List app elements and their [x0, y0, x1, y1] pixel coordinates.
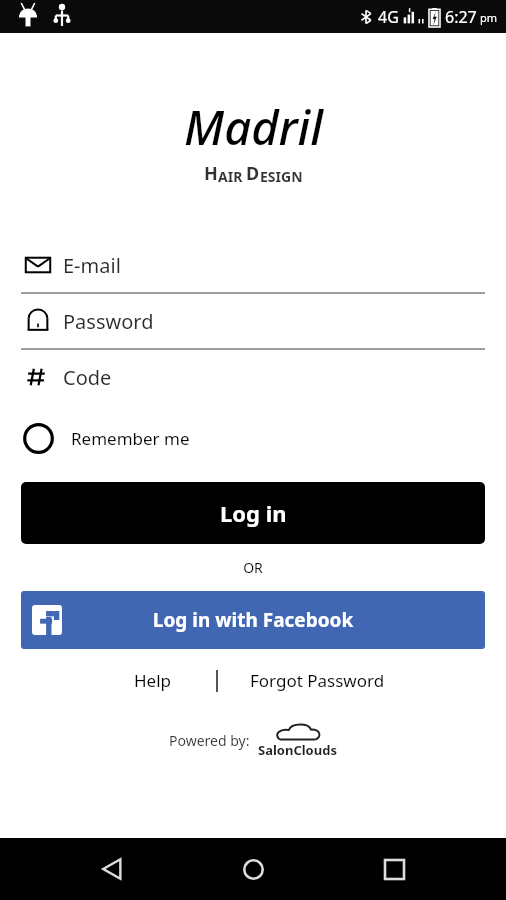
button[interactable]: Home — [224, 840, 282, 898]
staticText: Remember me — [71, 427, 190, 450]
button[interactable]: Back — [83, 840, 141, 898]
button[interactable]: Help — [116, 661, 190, 700]
staticText: H — [204, 161, 218, 186]
staticText: OR — [0, 558, 506, 577]
staticText: Password — [63, 308, 154, 335]
staticText: E-mail — [63, 252, 121, 279]
staticText: D — [246, 161, 260, 186]
staticText: Code — [63, 364, 112, 391]
button[interactable]: E-mail — [21, 238, 485, 294]
staticText: Forgot Password — [250, 669, 385, 692]
staticText: 6:27 — [445, 6, 477, 28]
staticText: Log in — [220, 498, 287, 528]
button[interactable]: Forgot Password — [244, 661, 391, 700]
staticText: pm — [480, 10, 498, 25]
staticText: Powered by: — [169, 731, 250, 750]
staticText: ESIGN — [260, 167, 303, 186]
staticText: SalonClouds — [258, 741, 337, 759]
button[interactable]: Log in with Facebook — [21, 591, 485, 649]
staticText: Help — [134, 669, 172, 692]
button[interactable]: Log in — [21, 482, 485, 544]
button[interactable]: Remember me — [21, 416, 485, 460]
staticText: AIR — [218, 167, 246, 186]
button[interactable]: Code — [21, 350, 485, 404]
button[interactable]: Recent apps — [365, 840, 423, 898]
staticText: Madril — [184, 95, 323, 159]
staticText: Log in with Facebook — [21, 607, 485, 633]
staticText: 4G — [378, 6, 399, 28]
button[interactable]: Password — [21, 294, 485, 350]
